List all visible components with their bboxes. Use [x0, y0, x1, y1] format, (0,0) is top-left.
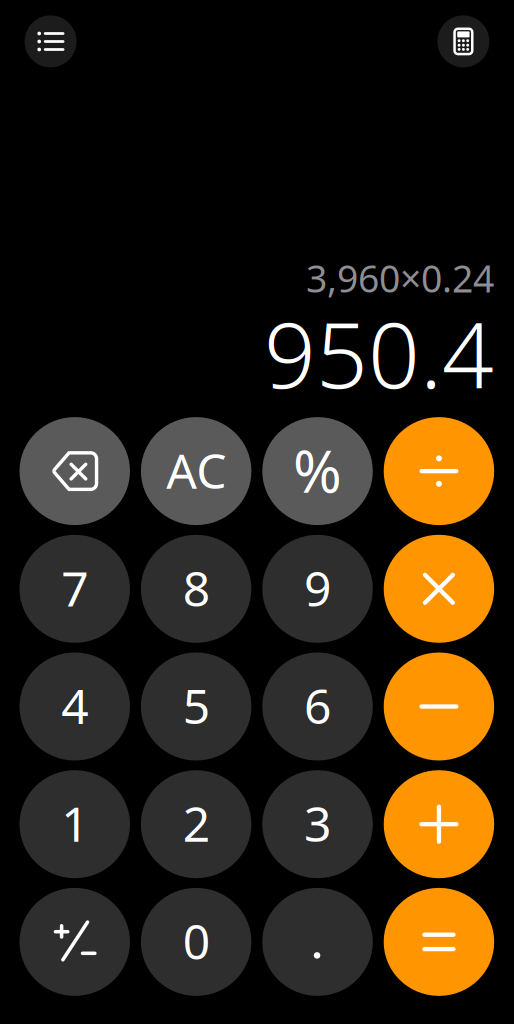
button[interactable]: Subtract: [384, 652, 494, 760]
button[interactable]: History: [25, 15, 77, 67]
staticText: 3: [304, 791, 331, 855]
button[interactable]: 3: [262, 770, 373, 878]
staticText: AC: [166, 438, 226, 502]
button[interactable]: Equals: [384, 888, 494, 996]
button[interactable]: AC: [141, 417, 251, 525]
button[interactable]: %: [262, 417, 373, 525]
staticText: 950.4: [264, 293, 494, 413]
staticText: 7: [61, 556, 88, 620]
button[interactable]: 7: [19, 535, 130, 643]
button[interactable]: Calculator mode: [437, 15, 489, 67]
button[interactable]: 8: [141, 535, 251, 643]
button[interactable]: 2: [141, 770, 251, 878]
staticText: 9: [304, 556, 331, 620]
button[interactable]: Multiply: [384, 535, 494, 643]
staticText: 1: [61, 791, 88, 855]
staticText: 2: [183, 791, 210, 855]
staticText: 3,960×0.24: [306, 253, 494, 303]
button[interactable]: Decimal point: [262, 888, 373, 996]
button[interactable]: Add: [384, 770, 494, 878]
staticText: 4: [61, 674, 88, 737]
button[interactable]: Divide: [384, 417, 494, 525]
button[interactable]: 9: [262, 535, 373, 643]
button[interactable]: Delete: [19, 417, 130, 525]
staticText: 0: [183, 909, 210, 973]
staticText: 8: [183, 556, 210, 620]
button[interactable]: Plus minus: [19, 888, 130, 996]
button[interactable]: 6: [262, 652, 373, 760]
staticText: %: [293, 431, 342, 509]
button[interactable]: 0: [141, 888, 251, 996]
button[interactable]: 5: [141, 652, 251, 760]
button[interactable]: 1: [19, 770, 130, 878]
button[interactable]: 4: [19, 652, 130, 760]
staticText: 6: [304, 674, 331, 737]
staticText: 5: [183, 674, 210, 737]
